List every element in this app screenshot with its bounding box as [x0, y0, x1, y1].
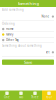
- button[interactable]: Four: [42, 90, 56, 100]
- button[interactable]: Family: [0, 32, 56, 37]
- staticText: Three: [31, 95, 39, 99]
- staticText: One: [4, 95, 10, 99]
- staticText: Save: [24, 59, 32, 65]
- staticText: Add something: [2, 8, 24, 11]
- staticText: Home: [6, 27, 14, 31]
- staticText: Something: [17, 1, 38, 6]
- button[interactable]: Other Tag: [0, 37, 56, 43]
- staticText: Other Tag: [6, 38, 19, 42]
- button[interactable]: Home: [0, 26, 56, 32]
- button[interactable]: Three: [28, 90, 42, 100]
- staticText: Set: [46, 50, 50, 54]
- staticText: None: [42, 15, 50, 18]
- button[interactable]: Something: [0, 0, 56, 7]
- staticText: Family: [6, 33, 13, 36]
- button[interactable]: Save: [2, 59, 54, 65]
- button[interactable]: One: [0, 90, 14, 100]
- staticText: Ordering: [2, 22, 15, 25]
- staticText: Two: [18, 95, 23, 99]
- button[interactable]: [0, 12, 56, 21]
- button[interactable]: [0, 48, 56, 56]
- button[interactable]: Two: [14, 90, 28, 100]
- staticText: Something about something: [2, 44, 42, 47]
- staticText: Four: [46, 95, 52, 99]
